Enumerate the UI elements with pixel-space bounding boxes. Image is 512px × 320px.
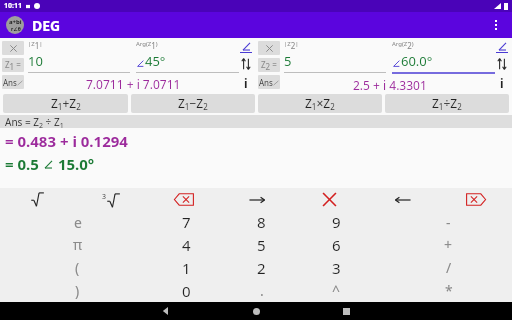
button[interactable]: * bbox=[411, 279, 486, 302]
button[interactable]: Z1+Z2 bbox=[3, 94, 128, 113]
staticText: Arg(Z1) bbox=[136, 40, 158, 51]
button[interactable]: Backspace bbox=[439, 188, 512, 211]
button[interactable]: Square root bbox=[0, 188, 74, 211]
button[interactable]: Polar form bbox=[240, 41, 252, 53]
button[interactable]: Clear bbox=[2, 41, 24, 55]
other: Move right bbox=[248, 194, 266, 206]
staticText: 5 bbox=[284, 52, 292, 70]
button[interactable]: 0 bbox=[149, 279, 224, 302]
staticText: ) bbox=[75, 281, 80, 300]
staticText: 3 bbox=[332, 258, 341, 278]
staticText: = 0.5 bbox=[5, 154, 43, 174]
staticText: . bbox=[260, 281, 264, 300]
button[interactable]: Back bbox=[121, 302, 211, 320]
button[interactable]: ) bbox=[40, 279, 115, 302]
staticText: 2.5 + i 4.3301 bbox=[353, 77, 427, 92]
button[interactable]: Polar form bbox=[496, 41, 508, 53]
button[interactable]: . bbox=[224, 279, 299, 302]
button[interactable]: |Z2| bbox=[284, 40, 386, 73]
staticText: + bbox=[444, 235, 453, 254]
staticText: 2 bbox=[257, 258, 266, 278]
button[interactable]: Delete forward bbox=[147, 188, 220, 211]
button[interactable]: Z2 = bbox=[258, 58, 280, 72]
staticText: Z2 = bbox=[261, 59, 277, 72]
button[interactable]: 5 bbox=[224, 233, 299, 256]
button[interactable]: Z1−Z2 bbox=[131, 94, 255, 113]
button[interactable]: Arg(Z1) bbox=[136, 40, 239, 73]
button[interactable]: ( bbox=[40, 256, 115, 279]
staticText: 7.0711 + i 7.0711 bbox=[86, 76, 181, 92]
button[interactable]: Cube root bbox=[74, 188, 147, 211]
staticText: 1 bbox=[182, 258, 191, 278]
button[interactable]: 8 bbox=[224, 211, 299, 233]
button[interactable]: More options bbox=[486, 15, 506, 35]
staticText: Ans bbox=[259, 77, 273, 88]
staticText: Ans = Z2 ÷ Z1 bbox=[5, 115, 64, 128]
staticText: 7 bbox=[182, 212, 191, 232]
staticText: Arg(Z2) bbox=[392, 40, 414, 51]
button[interactable]: i bbox=[496, 75, 508, 88]
button[interactable]: Clear bbox=[258, 41, 280, 55]
button[interactable]: Z1÷Z2 bbox=[385, 94, 509, 113]
button[interactable]: Clear all bbox=[293, 188, 366, 211]
button[interactable]: / bbox=[411, 256, 486, 279]
button[interactable]: e bbox=[40, 211, 115, 233]
staticText: π bbox=[73, 235, 83, 254]
other: Move left bbox=[394, 194, 412, 206]
staticText: 0 bbox=[182, 281, 191, 301]
button[interactable]: ^ bbox=[299, 279, 374, 302]
button[interactable]: 6 bbox=[299, 233, 374, 256]
staticText: DEG bbox=[32, 16, 61, 35]
staticText: 4 bbox=[182, 235, 191, 255]
button[interactable]: 7 bbox=[149, 211, 224, 233]
button[interactable]: 9 bbox=[299, 211, 374, 233]
staticText: ( bbox=[75, 258, 80, 277]
button[interactable]: Ans bbox=[2, 75, 24, 89]
button[interactable]: Ans bbox=[258, 75, 280, 89]
button[interactable]: Z1 = bbox=[2, 58, 24, 72]
other: Backspace bbox=[466, 193, 486, 206]
button[interactable]: Move right bbox=[220, 188, 293, 211]
other: Cube root bbox=[102, 192, 120, 208]
staticText: 15.0° bbox=[54, 154, 95, 174]
staticText: ^ bbox=[332, 281, 341, 300]
button[interactable]: 1 bbox=[149, 256, 224, 279]
staticText: / bbox=[446, 258, 452, 277]
button[interactable]: Swap bbox=[495, 57, 509, 71]
staticText: 45° bbox=[145, 52, 166, 70]
button[interactable]: i bbox=[240, 75, 252, 88]
button[interactable]: - bbox=[411, 211, 486, 233]
staticText: Z1+Z2 bbox=[51, 95, 81, 113]
other: Square root bbox=[31, 192, 44, 207]
staticText: 9 bbox=[332, 212, 341, 232]
staticText: 60.0° bbox=[401, 52, 433, 70]
button[interactable]: 3 bbox=[299, 256, 374, 279]
button[interactable]: Move left bbox=[366, 188, 439, 211]
staticText: 10:11 bbox=[4, 1, 22, 11]
other: Clear all bbox=[321, 191, 338, 208]
staticText: e bbox=[74, 213, 82, 232]
button[interactable]: Arg(Z2) bbox=[392, 40, 495, 74]
staticText: |Z1| bbox=[28, 40, 43, 51]
button[interactable]: π bbox=[40, 233, 115, 256]
staticText: 5 bbox=[257, 235, 266, 255]
button[interactable]: Recent apps bbox=[301, 302, 391, 320]
staticText: Z1÷Z2 bbox=[432, 95, 462, 113]
button[interactable]: Z1×Z2 bbox=[258, 94, 382, 113]
button[interactable]: 2 bbox=[224, 256, 299, 279]
button[interactable]: |Z1| bbox=[28, 40, 130, 73]
staticText: |Z2| bbox=[284, 40, 299, 51]
staticText: = 0.483 + i 0.1294 bbox=[5, 131, 128, 151]
staticText: 3 bbox=[102, 192, 107, 202]
staticText: * bbox=[445, 281, 453, 300]
button[interactable]: Swap bbox=[239, 57, 253, 71]
button[interactable]: + bbox=[411, 233, 486, 256]
other: App icon bbox=[6, 16, 24, 34]
button[interactable]: Home bbox=[211, 302, 301, 320]
button[interactable]: 4 bbox=[149, 233, 224, 256]
staticText: Z1−Z2 bbox=[178, 95, 208, 113]
staticText: r∠θ bbox=[11, 26, 21, 33]
staticText: 6 bbox=[332, 235, 341, 255]
other: Clear bbox=[265, 44, 274, 53]
staticText: - bbox=[446, 213, 451, 232]
